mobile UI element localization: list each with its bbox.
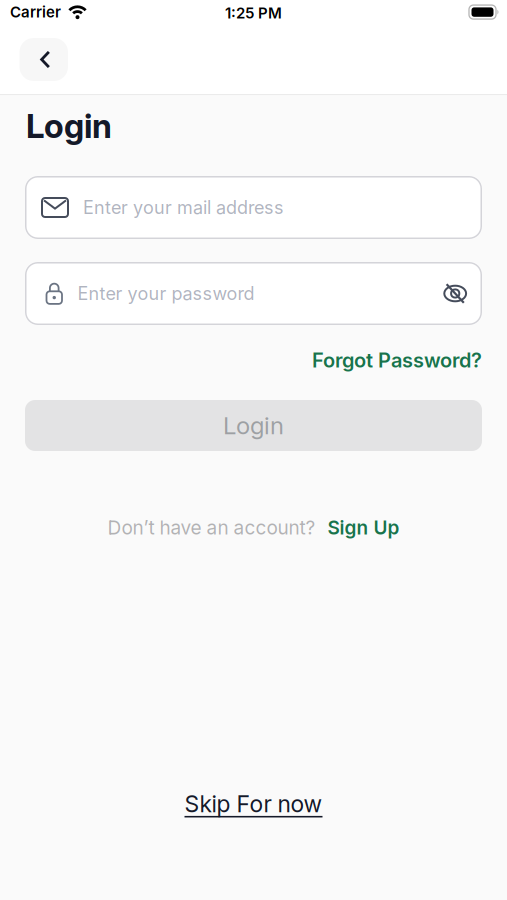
button[interactable]: Forgot Password? [312,348,482,372]
staticText: Carrier [10,3,61,21]
staticText: Forgot Password? [312,348,482,372]
staticText: Login [223,411,284,440]
button[interactable]: Login [25,400,482,451]
staticText: Sign Up [327,516,399,539]
staticText: Enter your password [77,283,254,304]
staticText: Login [26,106,112,146]
staticText: 1:25 PM [225,4,282,22]
button[interactable]: Show password [435,275,475,312]
button[interactable]: Sign Up [327,516,399,539]
button[interactable]: Skip For now [184,790,322,818]
staticText: Enter your mail address [83,197,284,218]
staticText: Don’t have an account? [107,516,315,539]
staticText: Skip For now [184,790,322,818]
button[interactable]: Back [19,38,68,81]
